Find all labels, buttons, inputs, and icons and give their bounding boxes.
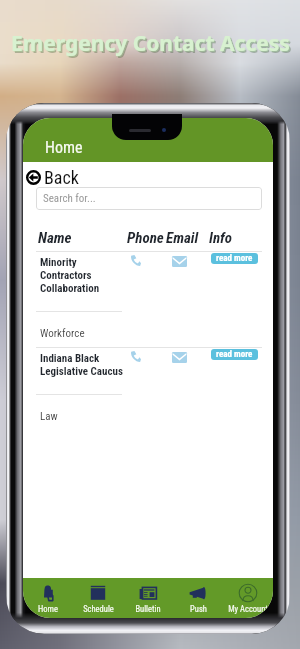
button[interactable]: Bulletin: [123, 578, 173, 618]
other: Email: [172, 256, 187, 267]
button[interactable]: Indiana Black: [23, 347, 273, 399]
button[interactable]: Search for...: [36, 187, 262, 210]
staticText: Home: [38, 604, 58, 614]
staticText: Indiana Black: [40, 352, 100, 365]
other: Call: [130, 351, 141, 362]
staticText: Legislative Caucus: [40, 365, 123, 378]
staticText: Schedule: [83, 604, 114, 614]
button[interactable]: Minority: [23, 251, 273, 303]
staticText: read more: [216, 253, 253, 264]
button[interactable]: Home: [23, 578, 73, 618]
button[interactable]: read more: [211, 253, 258, 264]
button[interactable]: Home: [23, 118, 273, 162]
other: Back: [26, 170, 41, 185]
staticText: Push: [190, 604, 207, 614]
button[interactable]: Push: [173, 578, 223, 618]
staticText: Info: [209, 229, 233, 247]
staticText: Search for...: [43, 192, 96, 205]
staticText: read more: [216, 349, 253, 360]
button[interactable]: Law: [40, 410, 58, 423]
staticText: Emergency Contact Access: [13, 31, 292, 60]
staticText: Name: [38, 229, 72, 247]
staticText: Home: [45, 138, 83, 157]
button[interactable]: Schedule: [73, 578, 123, 618]
other: Email: [172, 352, 187, 363]
button[interactable]: read more: [211, 349, 258, 360]
other: Home: [38, 583, 58, 603]
staticText: Phone: [127, 229, 164, 247]
other: Push: [188, 583, 208, 603]
other: Schedule: [88, 583, 108, 603]
staticText: Email: [166, 229, 199, 247]
staticText: Bulletin: [135, 604, 161, 614]
button[interactable]: Back: [23, 165, 103, 189]
staticText: Contractors: [40, 269, 92, 282]
button[interactable]: My Account: [223, 578, 273, 618]
staticText: Back: [44, 167, 79, 188]
button[interactable]: Workforce: [40, 327, 85, 340]
staticText: Collaboration: [40, 282, 100, 295]
staticText: Emergency Contact Access: [12, 30, 291, 59]
staticText: My Account: [228, 604, 268, 614]
staticText: Minority: [40, 256, 77, 269]
other: My Account: [238, 583, 258, 603]
staticText: Emergency Contact Access: [11, 29, 290, 58]
other: Call: [130, 255, 141, 266]
other: Bulletin: [138, 583, 158, 603]
